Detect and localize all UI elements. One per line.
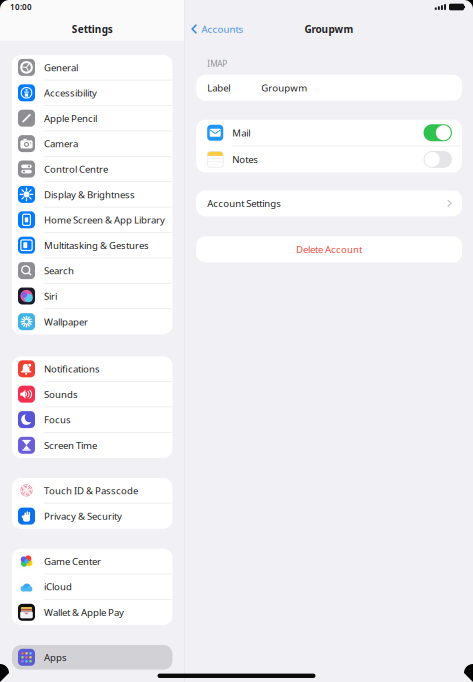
button[interactable]: Wallet & Apple Pay (12, 600, 172, 625)
button[interactable]: Apps (0, 645, 184, 670)
button[interactable]: Home Screen & App Library (12, 207, 172, 233)
button[interactable]: Apple Pencil (12, 106, 172, 131)
button[interactable]: Notifications (12, 356, 172, 382)
staticText: Control Centre (44, 162, 108, 176)
staticText: Screen Time (44, 439, 97, 452)
button[interactable]: Privacy & Security (12, 503, 172, 529)
staticText: Wallpaper (44, 315, 88, 328)
button[interactable]: Accessibility (12, 80, 172, 106)
staticText: Privacy & Security (44, 510, 122, 523)
staticText: Sounds (44, 388, 78, 401)
staticText: Accounts (201, 22, 243, 36)
staticText: Camera (44, 137, 78, 150)
button[interactable]: Search (12, 258, 172, 284)
button[interactable]: General (12, 55, 172, 80)
staticText: Game Center (44, 555, 101, 568)
button[interactable]: Sounds (12, 382, 172, 407)
staticText: iCloud (44, 580, 72, 593)
staticText: Wallet & Apple Pay (44, 606, 124, 619)
button[interactable]: Account Settings (196, 190, 462, 216)
staticText: Multitasking & Gestures (44, 239, 149, 252)
staticText: Mail (232, 126, 250, 139)
button[interactable]: Control Centre (12, 157, 172, 182)
button[interactable]: Display & Brightness (12, 182, 172, 207)
button[interactable]: Screen Time (12, 433, 172, 458)
staticText: Home Screen & App Library (44, 213, 165, 226)
button[interactable]: Camera (12, 131, 172, 157)
button[interactable]: Accounts (185, 17, 243, 41)
staticText: Siri (44, 289, 57, 303)
staticText: Account Settings (207, 197, 281, 210)
staticText: Notes (232, 153, 258, 166)
staticText: Label (207, 81, 230, 94)
staticText: Apple Pencil (44, 112, 97, 125)
staticText: Notifications (44, 362, 100, 375)
staticText: General (44, 61, 78, 74)
staticText: Focus (44, 413, 71, 426)
staticText: Accessibility (44, 86, 97, 99)
staticText: Groupwm (305, 22, 354, 36)
button[interactable]: Game Center (12, 549, 172, 574)
button[interactable]: Touch ID & Passcode (12, 478, 172, 503)
staticText: Settings (72, 22, 113, 36)
staticText: IMAP (207, 58, 227, 69)
button[interactable]: Wallpaper (12, 309, 172, 334)
staticText: Display & Brightness (44, 188, 135, 201)
staticText: Groupwm (261, 81, 307, 94)
button[interactable]: Delete Account (196, 236, 462, 262)
staticText: Touch ID & Passcode (44, 484, 138, 497)
button[interactable]: Multitasking & Gestures (12, 233, 172, 258)
staticText: Apps (44, 651, 67, 664)
button[interactable]: Focus (12, 407, 172, 433)
staticText: Delete Account (296, 243, 362, 256)
button[interactable]: Siri (12, 284, 172, 309)
staticText: 10:00 (10, 2, 32, 12)
button[interactable]: iCloud (12, 574, 172, 600)
staticText: Search (44, 264, 74, 277)
